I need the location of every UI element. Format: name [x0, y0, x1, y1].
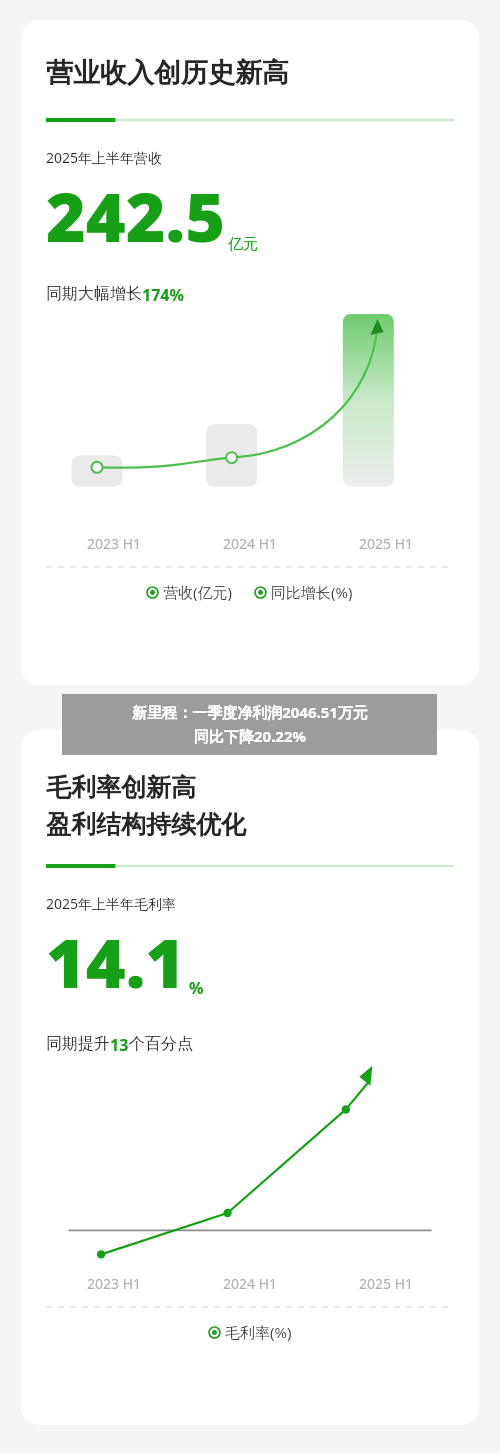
staticText: 13 [110, 1034, 129, 1056]
staticText: 毛利率(%) [225, 1322, 292, 1342]
button[interactable]: 同比增长(%) [255, 582, 353, 602]
staticText: 盈利结构持续优化 [46, 809, 246, 840]
staticText: 2025年上半年营收 [46, 148, 163, 167]
staticText: 174% [142, 284, 184, 306]
staticText: % [189, 977, 204, 999]
staticText: 个百分点 [129, 1034, 193, 1054]
staticText: 2025 H1 [359, 534, 414, 553]
button[interactable]: 营业收入创历史新高 [21, 20, 479, 685]
staticText: 营收(亿元) [163, 582, 233, 602]
button[interactable]: 营收(亿元) [147, 582, 233, 602]
button[interactable]: 新里程：一季度净利润2046.51万元 同比下降20.22% [62, 694, 437, 755]
staticText: 营业收入创历史新高 [46, 56, 289, 90]
staticText: 2023 H1 [87, 534, 142, 553]
staticText: 同期大幅增长 [46, 284, 142, 304]
staticText: 同期提升 [46, 1034, 110, 1054]
staticText: 242.5 [46, 169, 226, 262]
button[interactable]: 毛利率创新高 [21, 730, 479, 1425]
staticText: 毛利率创新高 [46, 772, 196, 803]
staticText: 同比增长(%) [271, 582, 353, 602]
staticText: 14.1 [46, 915, 186, 1008]
staticText: 2025年上半年毛利率 [46, 894, 177, 913]
staticText: 2024 H1 [223, 1274, 278, 1293]
staticText: 新里程：一季度净利润2046.51万元 同比下降20.22% [132, 702, 368, 747]
staticText: 2025 H1 [359, 1274, 414, 1293]
staticText: 亿元 [228, 235, 258, 254]
staticText: 2024 H1 [223, 534, 278, 553]
staticText: 2023 H1 [87, 1274, 142, 1293]
button[interactable]: 毛利率(%) [209, 1322, 292, 1342]
